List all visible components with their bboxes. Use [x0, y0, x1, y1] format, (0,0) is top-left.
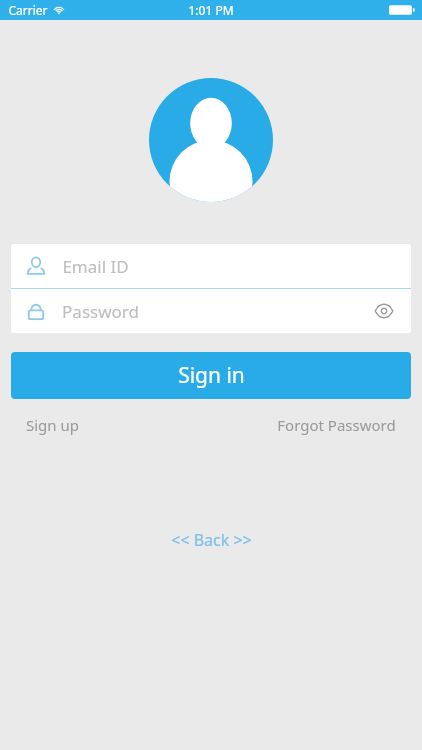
button[interactable]: Show password [371, 298, 397, 324]
staticText: Sign up [26, 415, 79, 435]
staticText: 1:01 PM [188, 2, 234, 18]
button[interactable]: Sign in [11, 352, 411, 399]
button[interactable]: << Back >> [157, 521, 266, 559]
staticText: Forgot Password [277, 415, 396, 435]
button[interactable]: Email ID [11, 244, 411, 288]
staticText: Email ID [62, 255, 129, 278]
button[interactable]: Forgot Password [271, 407, 402, 443]
staticText: Sign in [178, 361, 245, 390]
staticText: << Back >> [171, 529, 252, 551]
button[interactable]: Password [11, 289, 411, 333]
staticText: Carrier [8, 2, 48, 18]
staticText: Password [62, 300, 139, 323]
button[interactable]: Sign up [20, 407, 85, 443]
